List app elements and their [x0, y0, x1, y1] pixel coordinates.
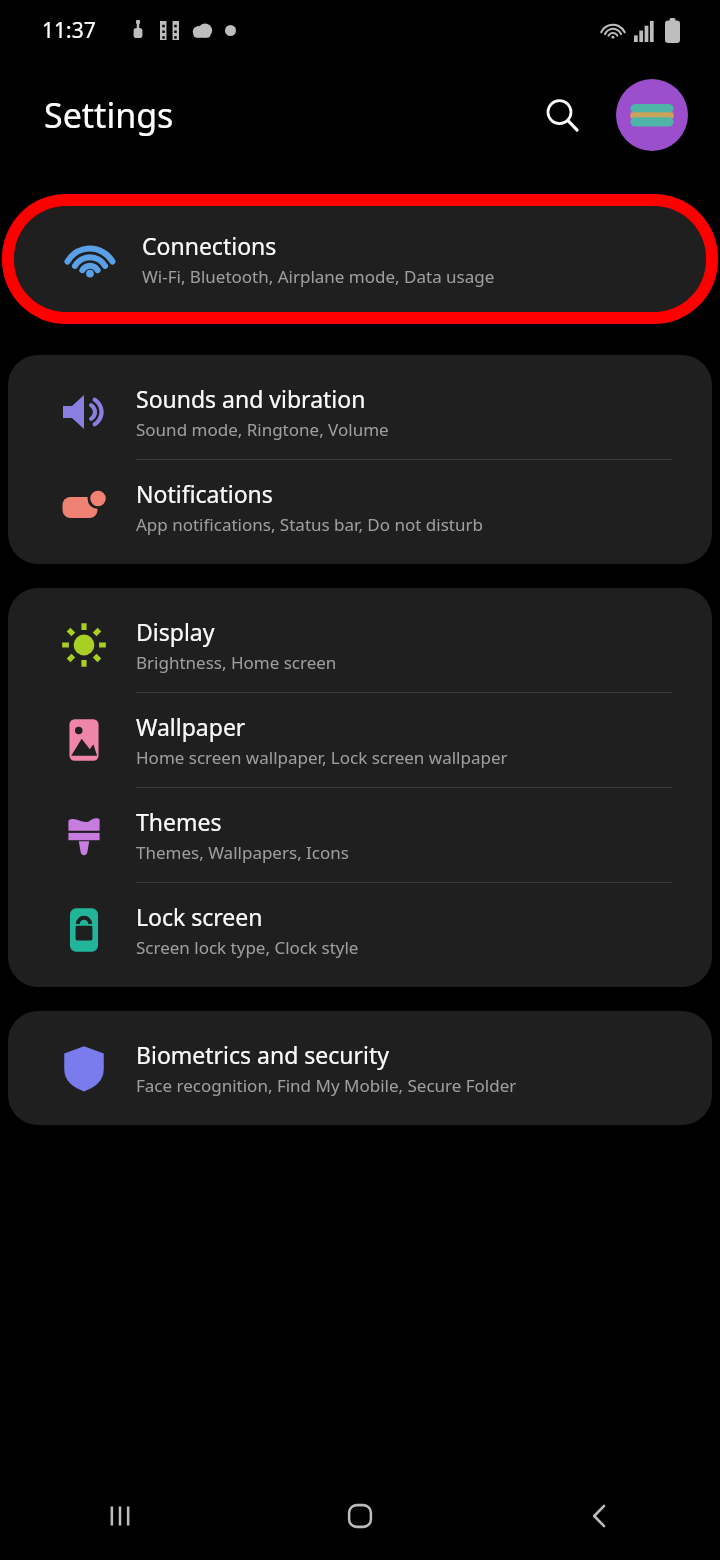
- button[interactable]: Back: [480, 1472, 720, 1560]
- button[interactable]: Themes: [8, 788, 712, 882]
- button[interactable]: Search: [532, 85, 592, 145]
- staticText: 11:37: [42, 16, 96, 45]
- button[interactable]: Lock screen: [8, 883, 712, 977]
- staticText: Connections: [142, 230, 277, 261]
- staticText: App notifications, Status bar, Do not di…: [136, 513, 483, 536]
- button[interactable]: Home: [240, 1472, 480, 1560]
- staticText: Themes: [136, 806, 222, 837]
- button[interactable]: Account: [616, 79, 688, 151]
- button[interactable]: Biometrics and security: [8, 1021, 712, 1115]
- button[interactable]: Recents: [0, 1472, 240, 1560]
- staticText: Sounds and vibration: [136, 383, 366, 414]
- staticText: Lock screen: [136, 901, 263, 932]
- button[interactable]: Connections: [14, 206, 706, 312]
- staticText: Face recognition, Find My Mobile, Secure…: [136, 1074, 517, 1097]
- staticText: Home screen wallpaper, Lock screen wallp…: [136, 746, 508, 769]
- staticText: Notifications: [136, 478, 273, 509]
- staticText: Screen lock type, Clock style: [136, 936, 359, 959]
- staticText: Biometrics and security: [136, 1039, 390, 1070]
- button[interactable]: Sounds and vibration: [8, 365, 712, 459]
- staticText: Wallpaper: [136, 711, 246, 742]
- staticText: Sound mode, Ringtone, Volume: [136, 418, 389, 441]
- staticText: Settings: [44, 92, 174, 138]
- button[interactable]: Notifications: [8, 460, 712, 554]
- staticText: Brightness, Home screen: [136, 651, 337, 674]
- staticText: Display: [136, 616, 215, 647]
- staticText: Themes, Wallpapers, Icons: [136, 841, 349, 864]
- button[interactable]: Display: [8, 598, 712, 692]
- button[interactable]: Wallpaper: [8, 693, 712, 787]
- staticText: Wi-Fi, Bluetooth, Airplane mode, Data us…: [142, 265, 495, 288]
